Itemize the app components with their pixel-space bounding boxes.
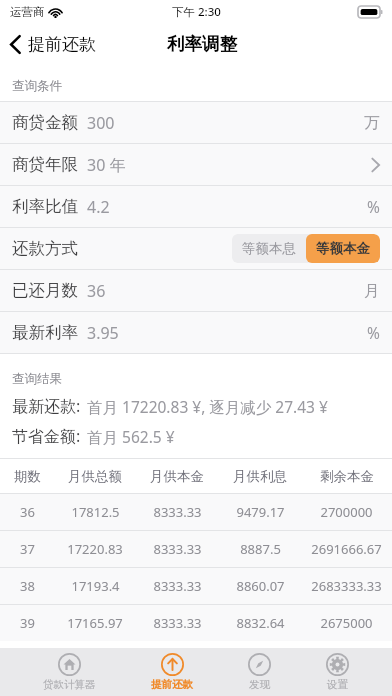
button[interactable]: 等额本金 — [306, 234, 380, 263]
staticText: 万 — [364, 113, 380, 133]
staticText: 月供利息 — [233, 468, 287, 485]
button[interactable]: 商贷金额 — [0, 102, 392, 143]
staticText: 利率比值 — [12, 196, 78, 217]
button[interactable]: 36 — [0, 494, 392, 530]
staticText: 商贷金额 — [12, 112, 78, 133]
button[interactable]: 利率比值 — [0, 186, 392, 227]
staticText: 8333.33 — [153, 503, 202, 521]
staticText: 38 — [20, 577, 35, 595]
staticText: 36 — [20, 503, 35, 521]
other: 提前还款 — [161, 653, 184, 676]
staticText: 剩余本金 — [320, 468, 374, 485]
other: 发现 — [248, 653, 271, 676]
staticText: 提前还款 — [28, 34, 96, 55]
button[interactable]: 38 — [0, 568, 392, 604]
staticText: 商贷年限 — [12, 154, 78, 175]
staticText: 月 — [364, 281, 380, 301]
staticText: 3.95 — [87, 322, 119, 344]
staticText: 期数 — [14, 468, 41, 485]
staticText: 首月 17220.83 ¥, 逐月减少 27.43 ¥ — [87, 396, 328, 417]
staticText: 36 — [87, 280, 106, 302]
other: 贷款计算器 — [58, 653, 81, 676]
button[interactable]: 还款方式 — [0, 228, 392, 269]
staticText: 运营商 — [10, 5, 45, 19]
staticText: 300 — [87, 112, 115, 134]
staticText: 17220.83 — [67, 540, 123, 558]
button[interactable]: 返回 — [0, 30, 108, 59]
staticText: 发现 — [249, 678, 270, 691]
button[interactable]: 贷款计算器 — [31, 650, 108, 694]
staticText: 已还月数 — [12, 280, 78, 301]
staticText: 贷款计算器 — [43, 678, 96, 691]
staticText: % — [367, 322, 380, 343]
staticText: 39 — [20, 614, 35, 632]
button[interactable]: 等额本息 — [232, 234, 306, 263]
staticText: 17812.5 — [71, 503, 120, 521]
other: 返回 — [10, 35, 21, 54]
staticText: 37 — [20, 540, 35, 558]
staticText: % — [367, 196, 380, 217]
staticText: 8832.64 — [236, 614, 285, 632]
staticText: 利率调整 — [167, 33, 237, 55]
staticText: 等额本息 — [242, 240, 296, 257]
staticText: 8333.33 — [153, 540, 202, 558]
button[interactable]: 商贷年限 — [0, 144, 392, 185]
staticText: 节省金额: — [12, 425, 81, 447]
staticText: 17193.4 — [71, 577, 120, 595]
staticText: 30 年 — [87, 154, 126, 176]
staticText: 还款方式 — [12, 238, 78, 259]
staticText: 最新利率 — [12, 322, 78, 343]
staticText: 查询条件 — [12, 78, 62, 94]
staticText: 8887.5 — [240, 540, 281, 558]
staticText: 2691666.67 — [311, 540, 382, 558]
other: 选择商贷年限 — [371, 157, 380, 173]
button[interactable]: 设置 — [314, 650, 361, 694]
staticText: 设置 — [327, 678, 348, 691]
button[interactable]: 37 — [0, 531, 392, 567]
staticText: 下午 2:30 — [172, 4, 221, 20]
staticText: 首月 562.5 ¥ — [87, 426, 175, 447]
button[interactable]: 39 — [0, 605, 392, 641]
staticText: 9479.17 — [236, 503, 285, 521]
staticText: 2683333.33 — [311, 577, 382, 595]
staticText: 2675000 — [320, 614, 373, 632]
staticText: 最新还款: — [12, 395, 81, 417]
staticText: 月供本金 — [150, 468, 204, 485]
staticText: 提前还款 — [151, 678, 193, 691]
staticText: 查询结果 — [12, 371, 62, 387]
staticText: 17165.97 — [67, 614, 123, 632]
button[interactable]: 提前还款 — [139, 650, 205, 694]
staticText: 月供总额 — [68, 468, 122, 485]
staticText: 4.2 — [87, 196, 110, 218]
button[interactable]: 发现 — [236, 650, 283, 694]
staticText: 8333.33 — [153, 577, 202, 595]
staticText: 8333.33 — [153, 614, 202, 632]
button[interactable]: 已还月数 — [0, 270, 392, 311]
button[interactable]: 最新利率 — [0, 312, 392, 353]
staticText: 2700000 — [320, 503, 373, 521]
staticText: 等额本金 — [316, 240, 370, 257]
other: 设置 — [326, 653, 349, 676]
staticText: 8860.07 — [236, 577, 285, 595]
